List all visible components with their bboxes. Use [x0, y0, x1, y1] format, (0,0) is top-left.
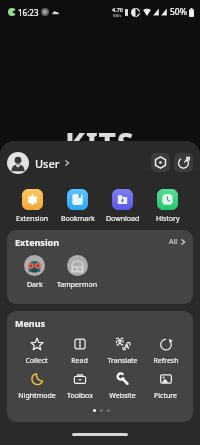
staticText: Translate [107, 356, 138, 366]
button[interactable]: All [169, 237, 186, 247]
button[interactable]: Dark [24, 255, 45, 290]
staticText: Dark [27, 280, 43, 290]
staticText: Tampermon [57, 280, 98, 290]
staticText: History [156, 214, 180, 224]
staticText: Nightmode [18, 391, 56, 401]
staticText: KB/s [113, 13, 122, 18]
button[interactable]: Settings [151, 153, 170, 172]
button[interactable]: History [145, 189, 190, 224]
button[interactable]: Refresh page [174, 153, 193, 172]
staticText: 16:23 [18, 7, 39, 18]
staticText: Picture [154, 391, 177, 401]
button[interactable]: Translate [101, 337, 144, 366]
button[interactable]: Refresh [144, 337, 187, 366]
staticText: Refresh [153, 356, 179, 366]
staticText: Extension [15, 236, 60, 248]
staticText: Collect [25, 356, 48, 366]
button[interactable]: Tampermon [57, 255, 98, 290]
button[interactable]: Collect [15, 337, 58, 366]
staticText: 50% [170, 6, 187, 18]
staticText: All [169, 237, 178, 247]
staticText: Extension [16, 214, 49, 224]
button[interactable]: Extension [10, 189, 55, 224]
button[interactable]: Download [100, 189, 145, 224]
button[interactable]: Read [58, 337, 101, 366]
button[interactable]: Website [101, 372, 144, 401]
staticText: Toolbox [67, 391, 93, 401]
staticText: KITS [65, 123, 135, 164]
button[interactable]: Bookmark [55, 189, 100, 224]
button[interactable]: User [7, 152, 76, 174]
button[interactable]: Toolbox [58, 372, 101, 401]
button[interactable]: Nightmode [15, 372, 58, 401]
button[interactable]: Picture [144, 372, 187, 401]
staticText: Download [106, 214, 140, 224]
staticText: Website [109, 391, 136, 401]
staticText: User [35, 156, 60, 171]
staticText: 4.76 [112, 6, 123, 13]
staticText: Read [71, 356, 88, 366]
staticText: Bookmark [61, 214, 95, 224]
staticText: Menus [15, 317, 46, 329]
